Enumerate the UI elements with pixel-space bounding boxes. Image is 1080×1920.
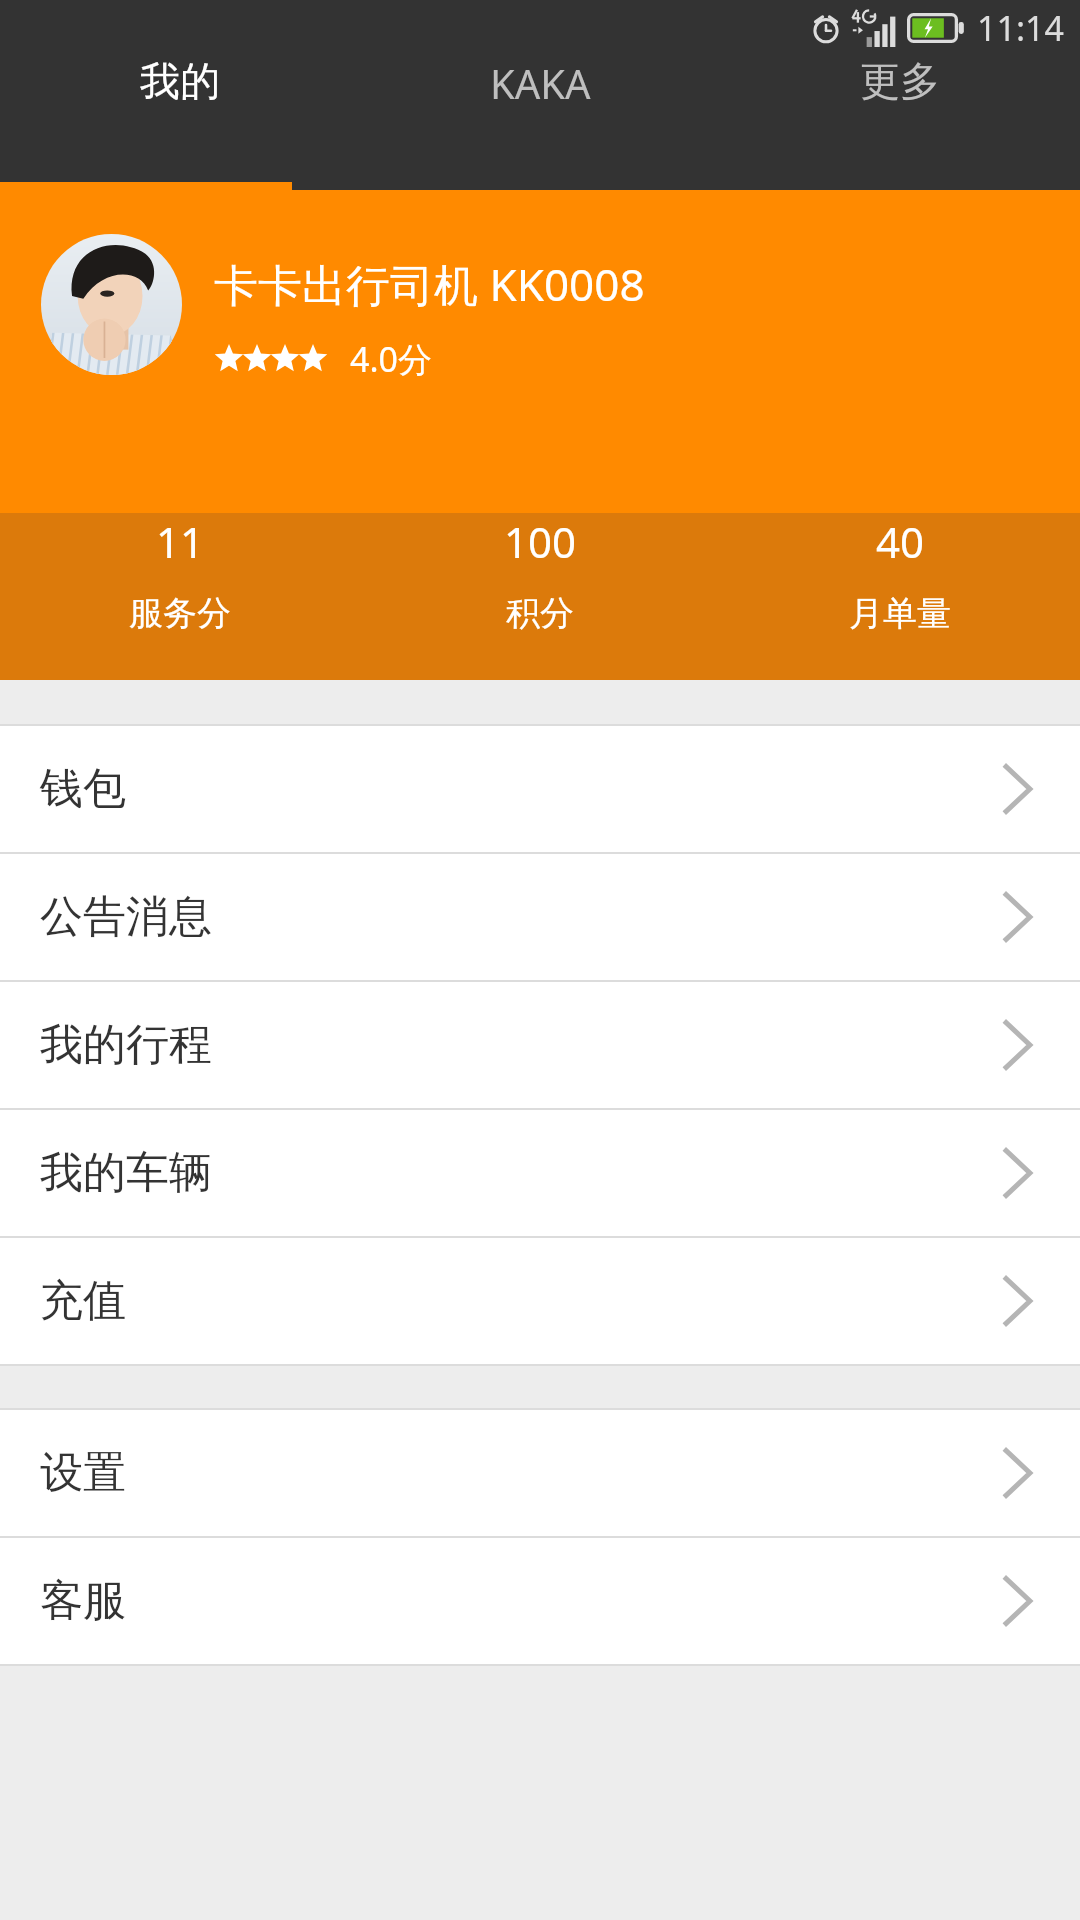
staticText: 公告消息 [40, 890, 212, 944]
staticText: 服务分 [129, 592, 231, 635]
button[interactable]: KAKA [360, 56, 720, 110]
other: 打开 设置 [1001, 1445, 1035, 1501]
staticText: 11 [156, 513, 205, 570]
staticText: 我的 [140, 56, 220, 106]
staticText: 我的车辆 [40, 1146, 212, 1200]
staticText: 充值 [40, 1274, 126, 1328]
button[interactable]: 100 [360, 513, 720, 635]
staticText: 月单量 [849, 592, 951, 635]
other: 打开 充值 [1001, 1273, 1035, 1329]
staticText: 积分 [506, 592, 574, 635]
staticText: 100 [504, 513, 577, 570]
staticText: 11:14 [977, 5, 1064, 51]
other: 打开 客服 [1001, 1573, 1035, 1629]
other: 打开 我的行程 [1001, 1017, 1035, 1073]
other: 打开 公告消息 [1001, 889, 1035, 945]
button[interactable]: 我的行程 [0, 982, 1080, 1108]
button[interactable]: 更多 [720, 56, 1080, 106]
button[interactable]: 卡卡出行司机 KK0008 [0, 190, 1080, 513]
staticText: 我的行程 [40, 1018, 212, 1072]
staticText: 钱包 [40, 762, 126, 816]
other: 打开 钱包 [1001, 761, 1035, 817]
button[interactable]: 客服 [0, 1538, 1080, 1664]
staticText: 4.0分 [350, 336, 433, 382]
button[interactable]: 充值 [0, 1238, 1080, 1364]
button[interactable]: 我的车辆 [0, 1110, 1080, 1236]
button[interactable]: 钱包 [0, 726, 1080, 852]
staticText: 40 [876, 513, 925, 570]
staticText: 客服 [40, 1574, 126, 1628]
other: 打开 我的车辆 [1001, 1145, 1035, 1201]
button[interactable]: 设置 [0, 1410, 1080, 1536]
staticText: 设置 [40, 1446, 126, 1500]
button[interactable]: 40 [720, 513, 1080, 635]
button[interactable]: 公告消息 [0, 854, 1080, 980]
staticText: 卡卡出行司机 KK0008 [214, 254, 645, 314]
staticText: KAKA [490, 56, 591, 110]
button[interactable]: 我的 [0, 56, 360, 106]
button[interactable]: 11 [0, 513, 360, 635]
staticText: 更多 [860, 56, 940, 106]
